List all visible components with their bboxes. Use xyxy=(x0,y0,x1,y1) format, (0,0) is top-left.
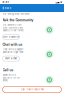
staticText: Chat with us xyxy=(2,43,22,46)
staticText: Call us xyxy=(2,68,13,72)
staticText: Start a question xyxy=(3,36,19,38)
staticText: Back xyxy=(5,6,11,10)
staticText: Ask the Community xyxy=(2,18,33,22)
staticText: Chat with a support specialist right now… xyxy=(2,48,24,54)
staticText: Start a chat xyxy=(5,57,17,60)
staticText: 9:41 xyxy=(2,0,8,4)
staticText: ▂▄ ▮ xyxy=(55,1,61,3)
button[interactable]: Call 1-800-555-0199 xyxy=(2,86,61,92)
button[interactable]: Start a question xyxy=(2,34,19,39)
staticText: Speak with a specialist on the phone. xyxy=(2,74,19,82)
staticText: Get answers from other customers and exp… xyxy=(2,24,24,32)
staticText: Call 1-800-555-0199 xyxy=(20,88,43,91)
button[interactable]: Start a chat xyxy=(2,56,19,61)
staticText: Not seeing what you need? xyxy=(2,13,29,15)
button[interactable]: Back xyxy=(1,4,12,12)
